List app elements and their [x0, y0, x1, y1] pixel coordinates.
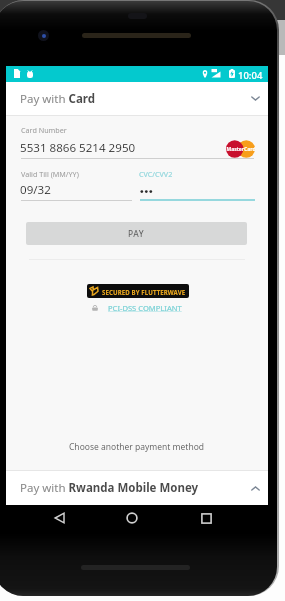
staticText: Pay with Rwanda Mobile Money: [20, 480, 199, 496]
staticText: Pay with Card: [20, 91, 95, 107]
staticText: Card Number: [21, 125, 67, 135]
button[interactable]: PAY: [26, 222, 247, 245]
button[interactable]: Choose another payment method: [6, 439, 268, 455]
staticText: CVC/CVV2: [139, 169, 173, 179]
button[interactable]: Recent apps: [195, 507, 217, 529]
staticText: MasterCard: [226, 146, 255, 153]
button[interactable]: Back: [48, 507, 70, 529]
staticText: SECURED BY FLUTTERWAVE: [102, 288, 186, 296]
button[interactable]: Pay with Rwanda Mobile Money: [6, 471, 268, 505]
button[interactable]: Pay with Card: [6, 82, 268, 115]
button[interactable]: PCI-DSS COMPLIANT: [90, 301, 190, 314]
staticText: 09/32: [20, 182, 51, 198]
staticText: 10:04: [238, 69, 263, 82]
staticText: Choose another payment method: [69, 441, 205, 453]
button[interactable]: Home: [121, 507, 143, 529]
staticText: PCI-DSS COMPLIANT: [108, 303, 182, 313]
staticText: Valid Till (MM/YY): [21, 169, 79, 179]
staticText: PAY: [128, 228, 145, 239]
staticText: 5531 8866 5214 2950: [20, 140, 136, 156]
